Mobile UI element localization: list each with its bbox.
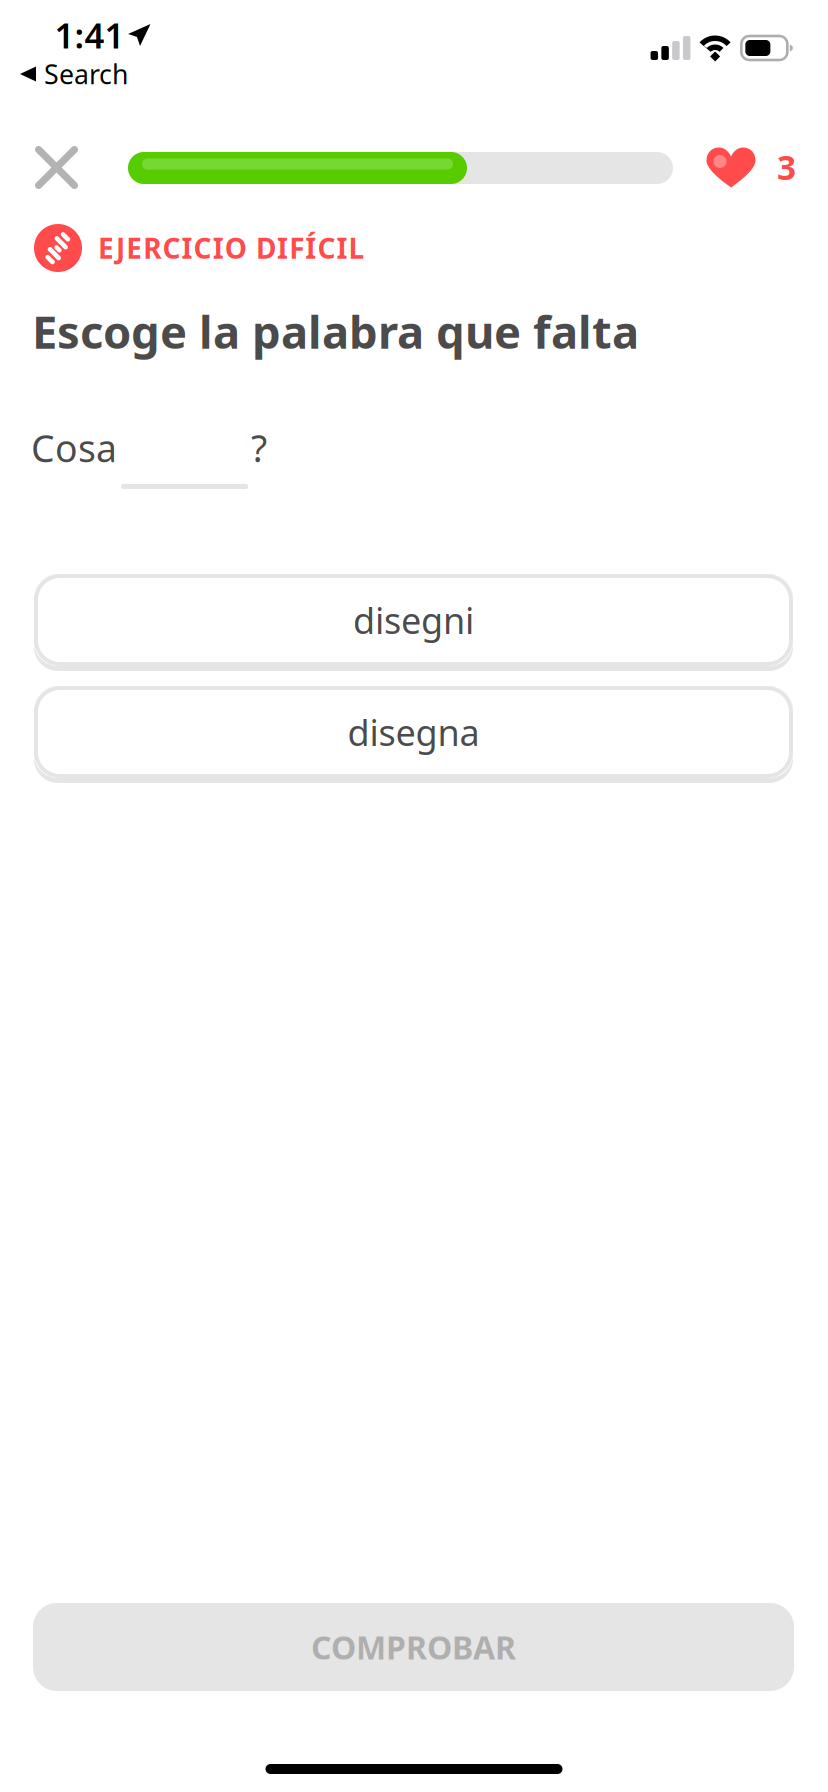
staticText: Search (44, 56, 128, 92)
staticText: 3 (777, 145, 796, 189)
staticText: disegna (347, 708, 479, 756)
staticText: Cosa (31, 423, 117, 473)
button[interactable]: Close lesson (18, 129, 95, 206)
button[interactable]: disegni (34, 574, 793, 671)
staticText: Escoge la palabra que falta (32, 301, 639, 361)
button[interactable]: Search (2, 48, 146, 100)
staticText: ? (251, 423, 267, 473)
staticText: EJERCICIO DIFÍCIL (98, 229, 365, 267)
button[interactable]: COMPROBAR (33, 1603, 794, 1691)
staticText: disegni (353, 596, 474, 644)
button[interactable]: disegna (34, 686, 793, 783)
staticText: 1:41 (54, 12, 124, 58)
staticText: COMPROBAR (311, 1626, 516, 1668)
button[interactable]: 3 hearts remaining (706, 135, 796, 199)
